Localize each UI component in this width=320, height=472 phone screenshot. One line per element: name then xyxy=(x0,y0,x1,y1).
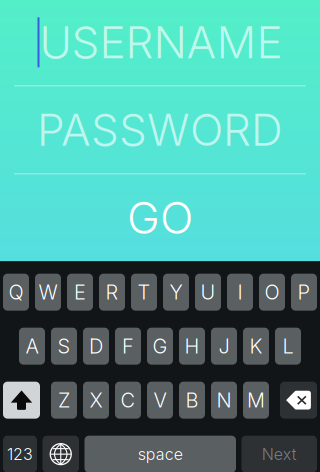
button[interactable]: U xyxy=(195,274,221,311)
staticText: C xyxy=(120,388,135,412)
button[interactable]: L xyxy=(275,328,301,365)
staticText: L xyxy=(282,334,293,358)
staticText: X xyxy=(89,388,102,412)
staticText: T xyxy=(137,280,150,304)
staticText: GO xyxy=(127,191,193,244)
staticText: M xyxy=(247,388,265,412)
staticText: H xyxy=(184,334,199,358)
button[interactable]: B xyxy=(179,382,205,419)
staticText: V xyxy=(153,388,166,412)
button[interactable]: N xyxy=(211,382,237,419)
staticText: I xyxy=(237,280,242,304)
button[interactable]: Q xyxy=(3,274,29,311)
button[interactable]: P xyxy=(291,274,317,311)
button[interactable]: H xyxy=(179,328,205,365)
staticText: R xyxy=(105,280,118,304)
button[interactable]: Shift xyxy=(3,382,40,419)
staticText: D xyxy=(89,334,103,358)
staticText: Z xyxy=(58,388,70,412)
button[interactable]: Z xyxy=(51,382,77,419)
staticText: USERNAME xyxy=(39,16,282,69)
button[interactable]: GO xyxy=(0,174,320,261)
button[interactable]: G xyxy=(147,328,173,365)
button[interactable]: F xyxy=(115,328,141,365)
staticText: 123 xyxy=(7,444,33,464)
button[interactable]: I xyxy=(227,274,253,311)
button[interactable]: USERNAME xyxy=(0,0,320,85)
button[interactable]: V xyxy=(147,382,173,419)
staticText: S xyxy=(57,334,70,358)
button[interactable]: Next xyxy=(241,436,317,472)
staticText: N xyxy=(216,388,231,412)
button[interactable]: Y xyxy=(163,274,189,311)
staticText: Y xyxy=(169,280,182,304)
staticText: space xyxy=(138,444,183,464)
staticText: J xyxy=(218,334,229,358)
button[interactable]: A xyxy=(19,328,45,365)
button[interactable]: S xyxy=(51,328,77,365)
button[interactable]: J xyxy=(211,328,237,365)
button[interactable]: Delete xyxy=(280,382,317,419)
button[interactable]: Next keyboard xyxy=(42,436,79,472)
staticText: F xyxy=(122,334,134,358)
button[interactable]: 123 xyxy=(3,436,37,472)
staticText: O xyxy=(264,280,279,304)
button[interactable]: R xyxy=(99,274,125,311)
staticText: K xyxy=(249,334,262,358)
button[interactable]: M xyxy=(243,382,269,419)
button[interactable]: W xyxy=(35,274,61,311)
button[interactable]: K xyxy=(243,328,269,365)
staticText: P xyxy=(297,280,310,304)
staticText: E xyxy=(74,280,86,304)
staticText: W xyxy=(38,280,57,304)
button[interactable]: T xyxy=(131,274,157,311)
button[interactable]: E xyxy=(67,274,93,311)
button[interactable]: X xyxy=(83,382,109,419)
staticText: Q xyxy=(8,280,23,304)
button[interactable]: O xyxy=(259,274,285,311)
staticText: PASSWORD xyxy=(37,103,283,156)
button[interactable]: space xyxy=(84,436,236,472)
staticText: G xyxy=(152,334,167,358)
button[interactable]: D xyxy=(83,328,109,365)
button[interactable]: PASSWORD xyxy=(0,86,320,173)
staticText: U xyxy=(200,280,215,304)
staticText: A xyxy=(25,334,38,358)
button[interactable]: C xyxy=(115,382,141,419)
staticText: B xyxy=(185,388,198,412)
staticText: Next xyxy=(262,444,297,464)
